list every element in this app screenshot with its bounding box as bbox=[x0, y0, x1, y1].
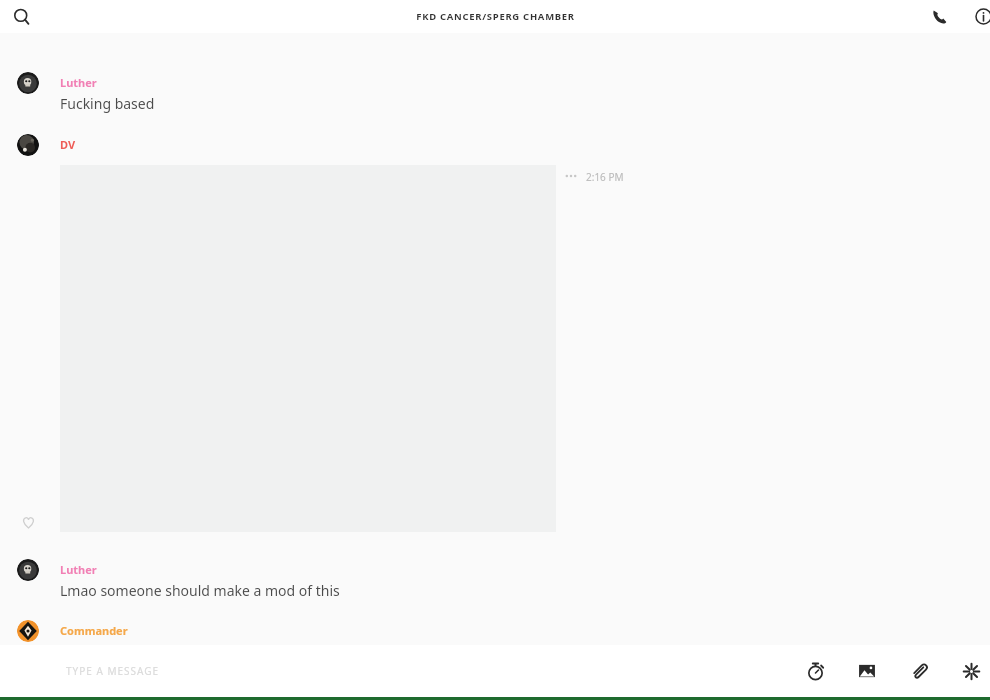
button[interactable]: TYPE A MESSAGE bbox=[66, 664, 160, 678]
staticText: Fucking based bbox=[60, 94, 155, 113]
staticText: FKD CANCER/SPERG CHAMBER bbox=[416, 10, 575, 23]
staticText: Commander bbox=[60, 623, 128, 638]
button[interactable]: Timer bbox=[800, 656, 830, 686]
staticText: DV bbox=[60, 137, 76, 152]
button[interactable]: Search bbox=[5, 0, 39, 33]
button[interactable]: Sticker bbox=[956, 656, 986, 686]
button[interactable]: Call bbox=[922, 0, 956, 33]
staticText: Luther bbox=[60, 75, 97, 90]
staticText: Luther bbox=[60, 562, 97, 577]
button[interactable]: Image bbox=[852, 656, 882, 686]
staticText: Lmao someone should make a mod of this bbox=[60, 581, 340, 600]
button[interactable]: More options bbox=[560, 165, 582, 187]
staticText: 2:16 PM bbox=[586, 170, 624, 184]
button[interactable]: Info bbox=[966, 0, 990, 33]
button[interactable]: Attach file bbox=[904, 656, 934, 686]
button[interactable]: Like bbox=[18, 512, 38, 532]
